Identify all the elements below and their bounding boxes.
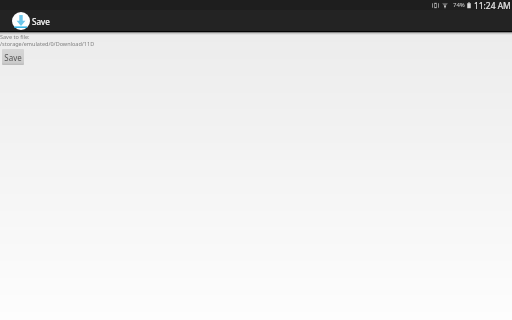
button[interactable]: Save (2, 49, 24, 65)
staticText: /storage/emulated/0/Download/11D (0, 40, 95, 47)
staticText: Save (32, 16, 50, 27)
staticText: Save to file: (0, 33, 30, 40)
staticText: Save (4, 52, 22, 63)
staticText: 74% (453, 1, 465, 9)
other: Download (12, 12, 30, 30)
staticText: 11:24 AM (474, 0, 511, 10)
button[interactable]: Download (0, 12, 56, 30)
